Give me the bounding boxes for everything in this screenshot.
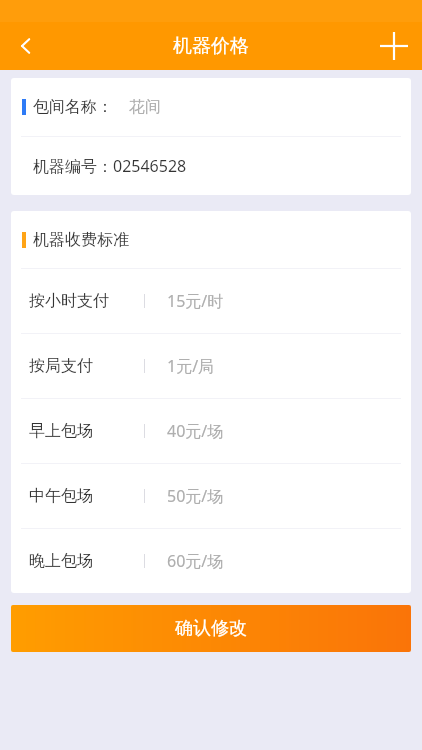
button[interactable]: 机器编号：02546528 bbox=[11, 137, 411, 195]
button[interactable]: 按小时支付 bbox=[11, 269, 411, 333]
staticText: 机器收费标准 bbox=[33, 230, 129, 250]
staticText: 花间 bbox=[129, 97, 161, 117]
button[interactable]: Add bbox=[366, 22, 422, 70]
button[interactable]: 晚上包场 bbox=[11, 529, 411, 593]
staticText: 按局支付 bbox=[29, 356, 93, 376]
staticText: 早上包场 bbox=[29, 421, 93, 441]
staticText: 1元/局 bbox=[167, 355, 215, 377]
button[interactable]: Back bbox=[0, 22, 52, 70]
staticText: 机器编号：02546528 bbox=[33, 155, 187, 177]
staticText: 40元/场 bbox=[167, 420, 224, 442]
staticText: 按小时支付 bbox=[29, 291, 109, 311]
staticText: 晚上包场 bbox=[29, 551, 93, 571]
staticText: 包间名称： bbox=[33, 97, 113, 117]
staticText: 50元/场 bbox=[167, 485, 224, 507]
staticText: 60元/场 bbox=[167, 550, 224, 572]
button[interactable]: 包间名称： bbox=[11, 78, 411, 136]
staticText: 中午包场 bbox=[29, 486, 93, 506]
button[interactable]: 中午包场 bbox=[11, 464, 411, 528]
staticText: 确认修改 bbox=[175, 617, 247, 640]
button[interactable]: 早上包场 bbox=[11, 399, 411, 463]
button[interactable]: 确认修改 bbox=[11, 605, 411, 652]
staticText: 15元/时 bbox=[167, 290, 224, 312]
staticText: 机器价格 bbox=[173, 34, 249, 58]
button[interactable]: 按局支付 bbox=[11, 334, 411, 398]
